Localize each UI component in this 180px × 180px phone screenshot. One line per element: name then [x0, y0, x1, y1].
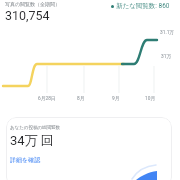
staticText: 9月	[112, 95, 120, 101]
button[interactable]: あなたの投稿の総閲覧数	[6, 117, 172, 180]
staticText: 新たな閲覧数: 860	[116, 2, 170, 10]
staticText: あなたの投稿の総閲覧数	[10, 125, 61, 131]
staticText: 写真の閲覧数（全期間）	[5, 1, 61, 7]
staticText: 310,754	[5, 8, 50, 23]
staticText: 8月	[77, 95, 85, 101]
staticText: 34万 回	[10, 132, 54, 148]
staticText: 10月	[145, 95, 156, 101]
staticText: 31万	[161, 53, 172, 59]
staticText: 6月28日	[38, 95, 56, 101]
staticText: 31.1万	[160, 29, 175, 35]
button[interactable]: 詳細を確認	[10, 156, 41, 164]
